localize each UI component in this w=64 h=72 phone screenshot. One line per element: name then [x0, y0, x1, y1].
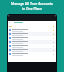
button[interactable]	[8, 36, 56, 40]
staticText: Manage All Your Accounts	[11, 1, 53, 5]
staticText: in One Place	[22, 6, 42, 10]
button[interactable]	[8, 40, 56, 44]
button[interactable]	[8, 28, 56, 32]
button[interactable]	[8, 52, 56, 56]
button[interactable]	[8, 32, 56, 36]
button[interactable]	[8, 44, 56, 48]
button[interactable]	[8, 48, 56, 52]
